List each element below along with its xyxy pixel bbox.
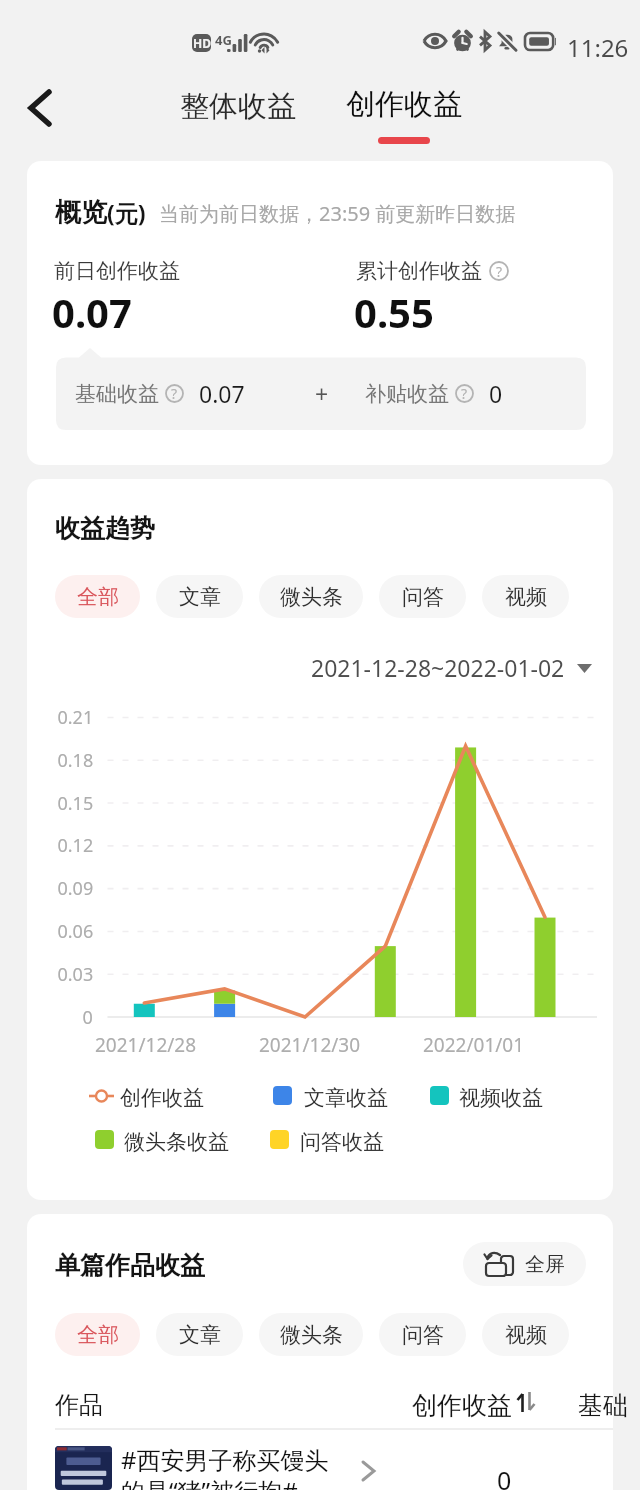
button[interactable]: 全屏 [463, 1242, 586, 1286]
staticText: 概览 [55, 196, 107, 229]
staticText: 问答收益 [300, 1129, 384, 1155]
staticText: ? [496, 262, 503, 281]
button[interactable]: 创作收益 [333, 84, 474, 144]
button[interactable]: 全部 [55, 575, 140, 618]
staticText: 文章 [179, 1322, 221, 1348]
button[interactable]: 视频 [482, 1313, 569, 1356]
staticText: 问答 [402, 1322, 444, 1348]
staticText: (元) [107, 197, 146, 228]
staticText: 问答 [402, 584, 444, 610]
staticText: 补贴收益 [365, 381, 449, 407]
button[interactable]: 整体收益 [167, 84, 308, 128]
button[interactable]: 问答 [379, 1313, 466, 1356]
staticText: 单篇作品收益 [55, 1250, 205, 1281]
staticText: 0 [497, 1463, 512, 1490]
staticText: 创作收益 [412, 1390, 512, 1421]
button[interactable]: 视频 [482, 575, 569, 618]
staticText: HD [193, 35, 211, 51]
staticText: 当前为前日数据，23:59 前更新昨日数据 [159, 200, 516, 227]
button[interactable]: 文章 [156, 1313, 243, 1356]
staticText: 前日创作收益 [54, 258, 180, 284]
button[interactable]: #西安男子称买馒头 的是“猪”被行拘# [27, 1430, 613, 1490]
staticText: 全部 [77, 1322, 119, 1348]
staticText: #西安男子称买馒头 的是“猪”被行拘# [121, 1443, 329, 1490]
staticText: 微头条 [280, 584, 343, 610]
staticText: 视频收益 [459, 1085, 543, 1111]
staticText: 文章收益 [304, 1085, 388, 1111]
staticText: 视频 [505, 1322, 547, 1348]
staticText: 0.07 [52, 285, 132, 339]
staticText: 整体收益 [180, 88, 296, 125]
staticText: 全屏 [525, 1252, 565, 1277]
staticText: 4G [215, 31, 232, 49]
staticText: 基础收益 [75, 381, 159, 407]
button[interactable]: 文章 [156, 575, 243, 618]
staticText: 11:26 [567, 31, 629, 64]
button[interactable]: Back [14, 78, 66, 138]
button[interactable]: 2021-12-28~2022-01-02 [311, 652, 592, 683]
staticText: 视频 [505, 584, 547, 610]
staticText: 微头条 [280, 1322, 343, 1348]
staticText: 0.55 [354, 285, 434, 339]
staticText: 作品 [55, 1390, 103, 1420]
staticText: 微头条收益 [124, 1129, 229, 1155]
button[interactable]: 问答 [379, 575, 466, 618]
staticText: 2021-12-28~2022-01-02 [311, 652, 565, 683]
staticText: 文章 [179, 584, 221, 610]
staticText: ? [461, 384, 468, 403]
staticText: + [315, 378, 329, 409]
button[interactable]: 全部 [55, 1313, 140, 1356]
button[interactable]: 微头条 [259, 575, 363, 618]
button[interactable]: 微头条 [259, 1313, 363, 1356]
staticText: 基础 [578, 1390, 628, 1421]
staticText: 0.07 [199, 378, 245, 409]
staticText: 累计创作收益 [356, 258, 482, 284]
staticText: 创作收益 [120, 1085, 204, 1111]
staticText: 创作收益 [346, 86, 462, 123]
staticText: ? [171, 384, 178, 403]
staticText: 全部 [77, 584, 119, 610]
staticText: 收益趋势 [55, 513, 155, 544]
staticText: 0 [489, 378, 503, 409]
